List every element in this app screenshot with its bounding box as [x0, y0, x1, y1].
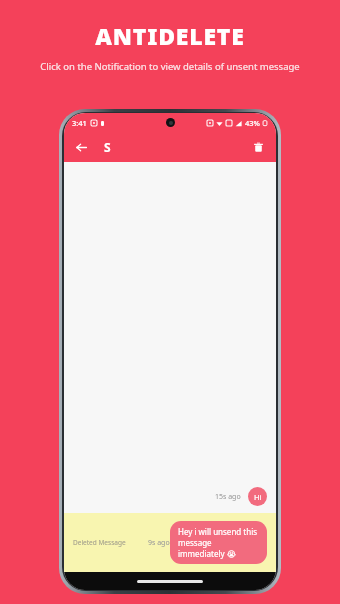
staticText: 3:41	[72, 118, 87, 128]
button[interactable]: Hey i will unsend this message immediate…	[170, 521, 267, 564]
staticText: 43%	[245, 118, 260, 128]
staticText: 9s ago	[148, 538, 170, 548]
staticText: S	[104, 139, 111, 155]
button[interactable]: Delete	[247, 136, 269, 158]
button[interactable]: Hi	[248, 487, 267, 506]
staticText: Hi	[254, 492, 262, 502]
staticText: Deleted Message	[73, 538, 126, 547]
staticText: ANTIDELETE	[95, 20, 245, 51]
button[interactable]: Deleted Message	[64, 513, 276, 572]
button[interactable]: Back	[70, 136, 92, 158]
staticText: Click on the Notification to view detail…	[40, 60, 300, 73]
staticText: 15s ago	[215, 492, 241, 502]
staticText: Hey i will unsend this message immediate…	[178, 526, 259, 559]
